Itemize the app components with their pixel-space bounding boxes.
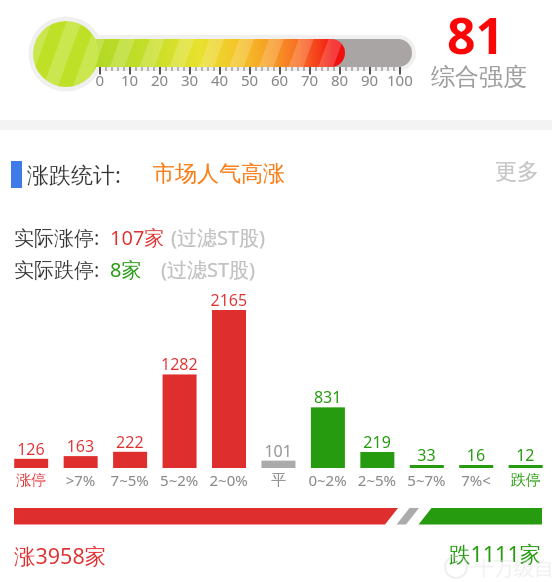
button[interactable] xyxy=(484,152,544,192)
